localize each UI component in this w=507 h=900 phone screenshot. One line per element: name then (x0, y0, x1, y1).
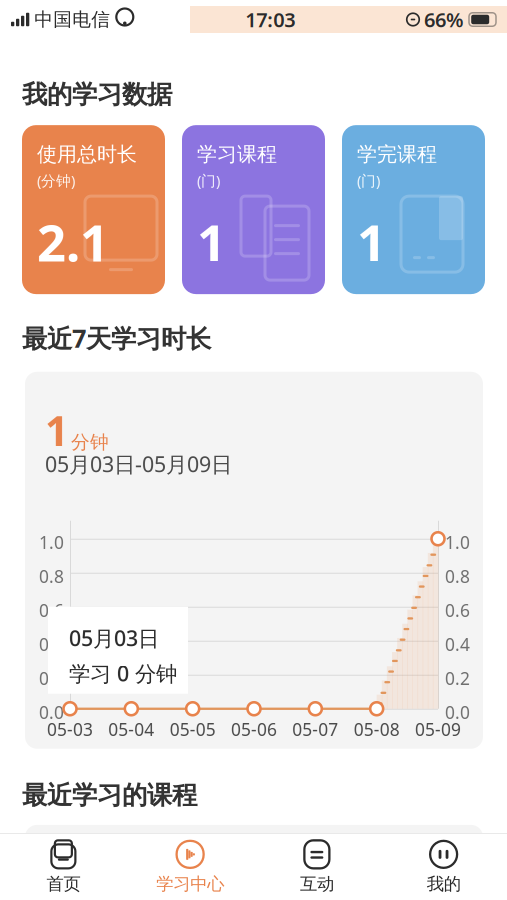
staticText: 05-04 (108, 718, 154, 741)
staticText: 0.4 (39, 633, 64, 656)
button[interactable]: 使用总时长 (22, 125, 165, 294)
button[interactable]: 学习中心 (127, 834, 254, 900)
button[interactable]: 首页 (0, 834, 127, 900)
staticText: 66% (424, 6, 464, 33)
staticText: 1.0 (39, 531, 64, 554)
staticText: 分钟 (71, 431, 109, 454)
staticText: 0.6 (445, 599, 470, 622)
staticText: 1 (357, 208, 386, 275)
staticText: 学完课程 (357, 142, 437, 167)
staticText: 0.2 (445, 667, 470, 690)
staticText: 05-06 (231, 718, 277, 741)
staticText: 05月03日-05月09日 (45, 450, 232, 478)
staticText: 1.0 (445, 531, 470, 554)
button[interactable]: 学习课程 (182, 125, 325, 294)
staticText: 05-05 (170, 718, 216, 741)
staticText: 学习中心 (156, 873, 224, 895)
staticText: 05月03日 (69, 624, 159, 652)
staticText: 学习课程 (197, 142, 277, 167)
staticText: 2.1 (37, 208, 109, 275)
staticText: 互动 (300, 873, 334, 895)
staticText: 中国电信 (34, 8, 110, 31)
staticText: 最近7天学习时长 (22, 321, 211, 355)
staticText: 05-03 (47, 718, 93, 741)
staticText: 0.4 (445, 633, 470, 656)
staticText: 05-09 (415, 718, 461, 741)
staticText: 0.0 (445, 701, 470, 724)
staticText: 0.8 (445, 565, 470, 588)
staticText: 0.2 (39, 667, 64, 690)
staticText: 1 (45, 403, 69, 458)
staticText: 0.8 (39, 565, 64, 588)
button[interactable]: 互动 (253, 834, 380, 900)
staticText: 使用总时长 (37, 142, 137, 167)
button[interactable]: 学完课程 (342, 125, 485, 294)
staticText: 0.6 (39, 599, 64, 622)
staticText: (门) (197, 171, 220, 190)
staticText: 我的 (427, 873, 461, 895)
staticText: 首页 (46, 873, 80, 895)
staticText: 最近学习的课程 (22, 780, 197, 811)
staticText: (分钟) (37, 171, 75, 190)
button[interactable]: 我的 (380, 834, 507, 900)
staticText: 0.0 (39, 701, 64, 724)
staticText: 05-08 (354, 718, 400, 741)
staticText: (门) (357, 171, 380, 190)
staticText: 17:03 (245, 6, 295, 33)
staticText: 1 (197, 208, 226, 275)
staticText: 学习 0 分钟 (69, 659, 177, 687)
staticText: 我的学习数据 (22, 79, 172, 110)
staticText: 05-07 (292, 718, 338, 741)
